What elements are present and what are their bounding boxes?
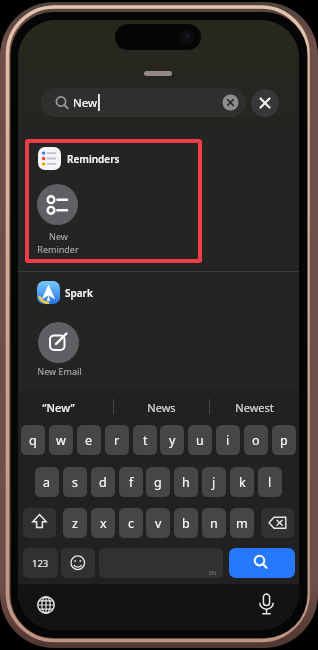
staticText: l bbox=[268, 474, 272, 491]
staticText: a bbox=[43, 474, 51, 491]
staticText: v bbox=[155, 515, 162, 532]
staticText: z bbox=[72, 515, 78, 532]
staticText: s bbox=[72, 474, 78, 491]
button[interactable]: t bbox=[133, 425, 157, 455]
staticText: New bbox=[49, 230, 68, 242]
button[interactable]: e bbox=[77, 425, 101, 455]
button[interactable]: s bbox=[63, 467, 87, 497]
button[interactable]: i bbox=[216, 425, 240, 455]
staticText: y bbox=[169, 432, 176, 449]
staticText: q bbox=[29, 432, 37, 449]
button[interactable]: v bbox=[146, 508, 170, 538]
button[interactable]: l bbox=[258, 467, 282, 497]
button[interactable]: EN bbox=[99, 548, 223, 578]
button[interactable] bbox=[261, 508, 294, 538]
staticText: t bbox=[143, 432, 148, 449]
button[interactable] bbox=[34, 144, 194, 174]
button[interactable]: r bbox=[105, 425, 129, 455]
staticText: Spark bbox=[65, 286, 93, 300]
button[interactable] bbox=[38, 322, 79, 363]
button[interactable]: z bbox=[63, 508, 87, 538]
staticText: h bbox=[182, 474, 190, 491]
button[interactable]: y bbox=[160, 425, 184, 455]
button[interactable]: o bbox=[244, 425, 268, 455]
button[interactable] bbox=[35, 594, 57, 616]
staticText: Newest bbox=[235, 400, 274, 415]
staticText: j bbox=[212, 474, 216, 491]
staticText: x bbox=[100, 515, 107, 532]
staticText: e bbox=[85, 432, 93, 449]
button[interactable]: f bbox=[119, 467, 143, 497]
staticText: u bbox=[196, 432, 204, 449]
staticText: EN bbox=[209, 569, 217, 576]
button[interactable]: k bbox=[230, 467, 254, 497]
staticText: m bbox=[236, 515, 248, 532]
button[interactable] bbox=[61, 548, 95, 578]
button[interactable] bbox=[255, 592, 278, 618]
button[interactable] bbox=[37, 184, 78, 225]
staticText: 123 bbox=[32, 557, 49, 570]
button[interactable] bbox=[23, 508, 56, 538]
staticText: b bbox=[182, 515, 190, 532]
staticText: p bbox=[280, 432, 288, 449]
button[interactable]: q bbox=[21, 425, 45, 455]
button[interactable]: New bbox=[41, 88, 246, 117]
button[interactable]: h bbox=[174, 467, 198, 497]
button[interactable]: “New” bbox=[18, 396, 99, 419]
button[interactable]: d bbox=[91, 467, 115, 497]
button[interactable] bbox=[229, 548, 295, 578]
button[interactable] bbox=[34, 278, 154, 308]
staticText: Reminder bbox=[37, 243, 79, 255]
button[interactable] bbox=[251, 89, 279, 117]
staticText: i bbox=[226, 432, 230, 449]
staticText: d bbox=[99, 474, 107, 491]
button[interactable]: Newest bbox=[210, 396, 299, 419]
staticText: New Email bbox=[37, 365, 82, 377]
staticText: c bbox=[128, 515, 135, 532]
staticText: g bbox=[154, 474, 162, 491]
staticText: k bbox=[239, 474, 246, 491]
staticText: New bbox=[73, 95, 98, 111]
staticText: o bbox=[252, 432, 260, 449]
button[interactable]: w bbox=[49, 425, 73, 455]
button[interactable]: x bbox=[91, 508, 115, 538]
button[interactable]: c bbox=[119, 508, 143, 538]
button[interactable]: n bbox=[202, 508, 226, 538]
staticText: Reminders bbox=[67, 152, 120, 166]
staticText: w bbox=[56, 432, 66, 449]
button[interactable]: a bbox=[35, 467, 59, 497]
button[interactable]: p bbox=[272, 425, 296, 455]
button[interactable]: j bbox=[202, 467, 226, 497]
button[interactable]: 123 bbox=[23, 548, 58, 578]
staticText: r bbox=[114, 432, 120, 449]
staticText: n bbox=[210, 515, 218, 532]
button[interactable]: b bbox=[174, 508, 198, 538]
button[interactable]: u bbox=[188, 425, 212, 455]
button[interactable]: g bbox=[146, 467, 170, 497]
button[interactable]: News bbox=[113, 396, 210, 419]
staticText: “New” bbox=[42, 400, 75, 415]
button[interactable]: m bbox=[230, 508, 254, 538]
staticText: f bbox=[129, 474, 134, 491]
staticText: News bbox=[147, 400, 176, 415]
